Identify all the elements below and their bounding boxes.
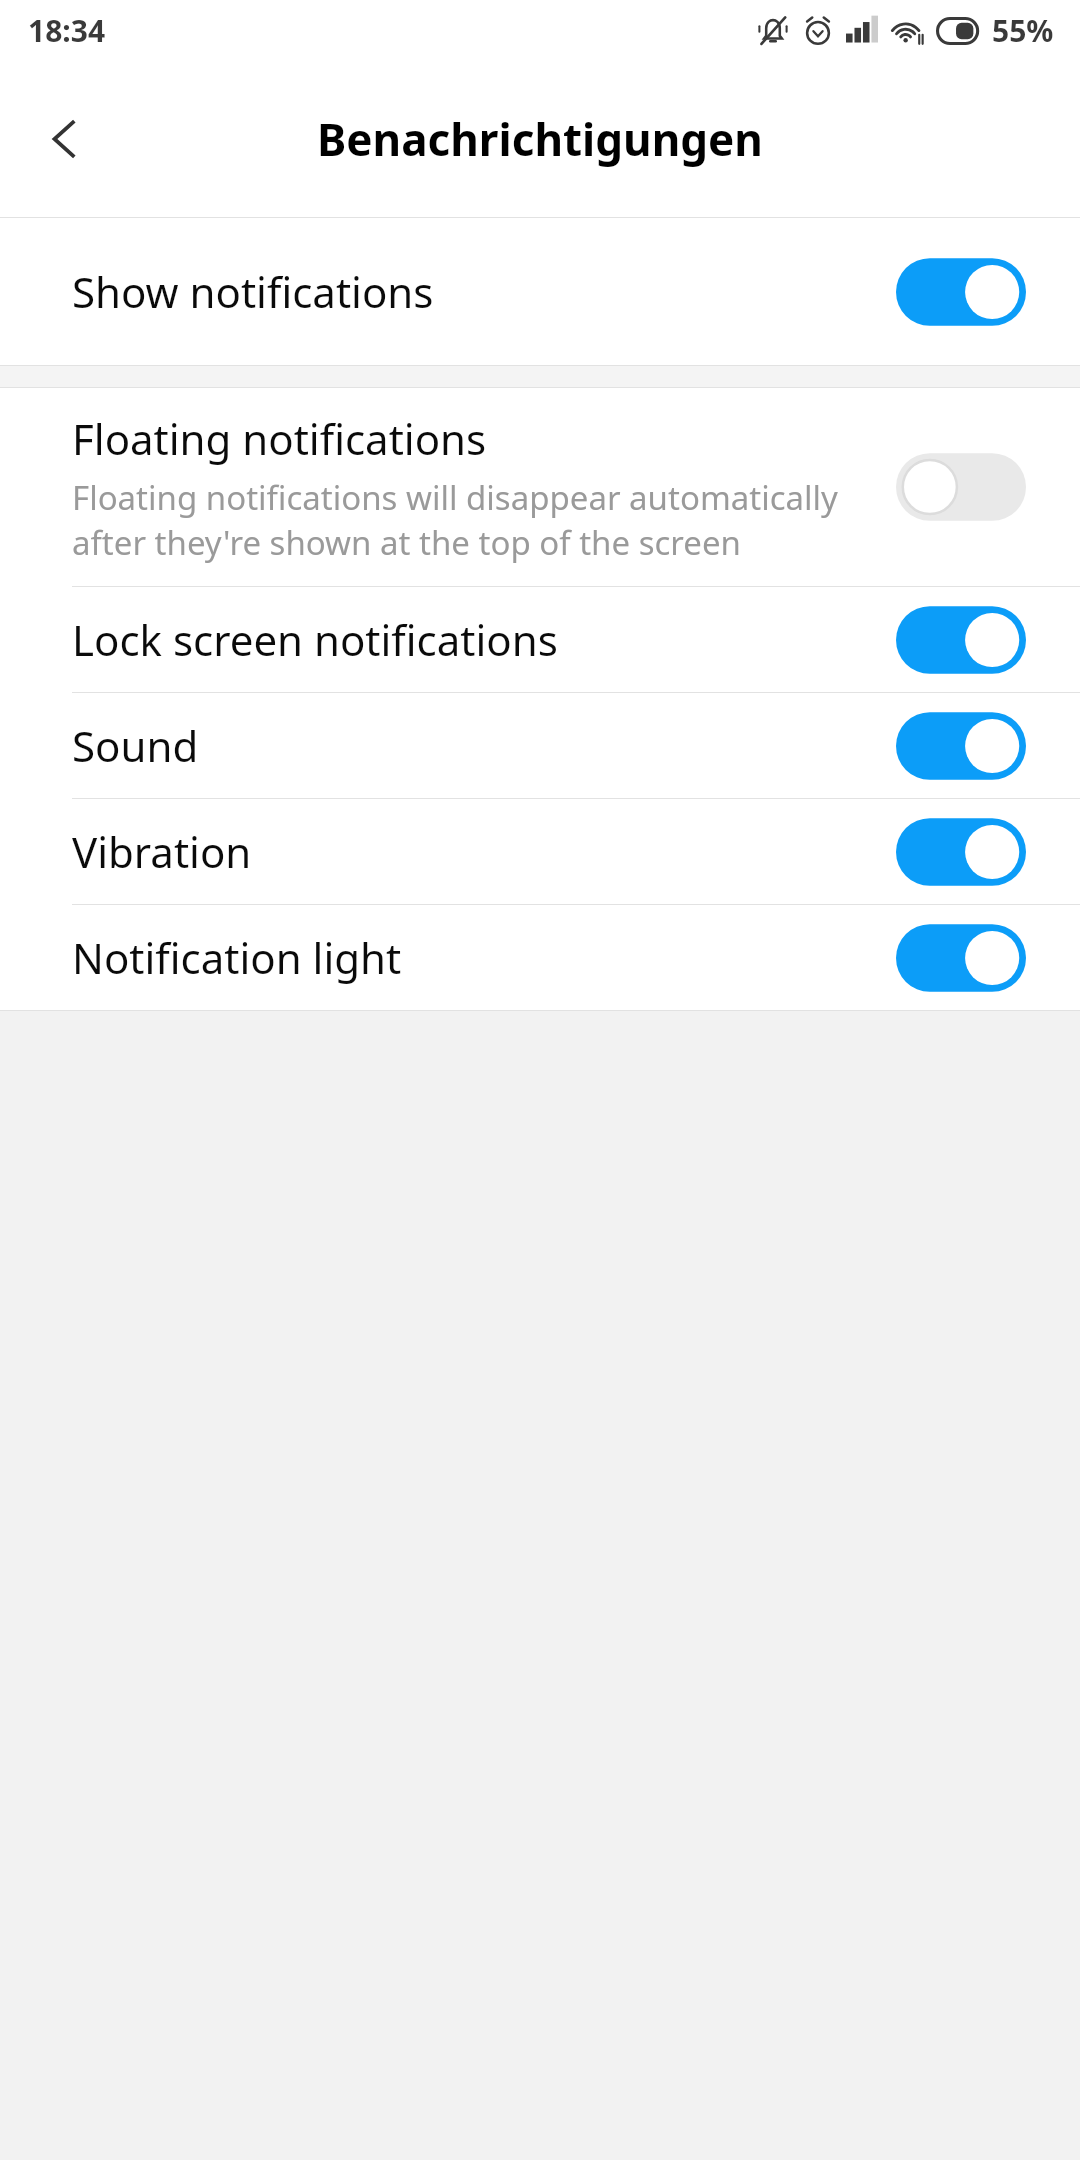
button[interactable]: Back <box>18 92 112 186</box>
button[interactable]: Sound <box>0 693 1080 798</box>
staticText: 55% <box>992 10 1054 51</box>
button[interactable]: Notification light on <box>896 922 1026 994</box>
button[interactable]: Notification light <box>0 905 1080 1010</box>
button[interactable]: Vibration on <box>896 816 1026 888</box>
staticText: 18:34 <box>28 10 106 51</box>
button[interactable]: Show notifications <box>0 218 1080 365</box>
staticText: Floating notifications will disappear au… <box>72 475 876 565</box>
button[interactable]: Floating notifications <box>0 388 1080 586</box>
button[interactable]: Lock screen notifications <box>0 587 1080 692</box>
staticText: Benachrichtigungen <box>317 109 763 169</box>
staticText: Lock screen notifications <box>72 611 558 668</box>
button[interactable]: Lock screen notifications on <box>896 604 1026 676</box>
staticText: Notification light <box>72 929 402 986</box>
button[interactable]: Sound on <box>896 710 1026 782</box>
button[interactable]: Floating notifications off <box>896 451 1026 523</box>
staticText: Show notifications <box>72 263 434 320</box>
button[interactable]: Vibration <box>0 799 1080 904</box>
staticText: Vibration <box>72 823 252 880</box>
button[interactable]: Show notifications on <box>896 256 1026 328</box>
staticText: Sound <box>72 717 199 774</box>
staticText: Floating notifications <box>72 410 487 467</box>
